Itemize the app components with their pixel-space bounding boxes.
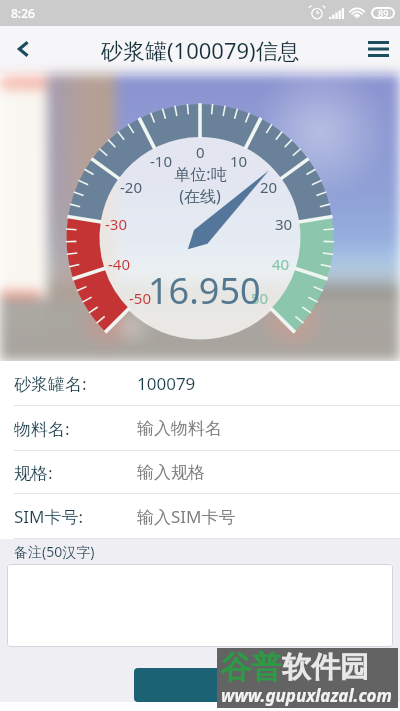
button[interactable]: 砂浆罐名: <box>0 361 400 406</box>
staticText: 输入物料名 <box>137 418 222 439</box>
staticText: www.gupuxlazal.com <box>221 684 392 707</box>
staticText: -50 <box>129 288 151 308</box>
staticText: -20 <box>120 177 142 197</box>
staticText: 物料名: <box>14 417 70 440</box>
staticText: (在线) <box>179 185 221 207</box>
staticText: 提交 <box>245 675 279 696</box>
button[interactable]: Menu <box>352 26 400 74</box>
staticText: 软件园 <box>282 649 369 686</box>
staticText: 谷普 <box>220 648 282 687</box>
staticText: 砂浆罐(100079)信息 <box>101 35 300 65</box>
staticText: 89 <box>378 7 389 19</box>
button[interactable] <box>7 564 393 647</box>
staticText: 单位:吨 <box>174 163 227 185</box>
button[interactable]: Back <box>0 26 48 74</box>
staticText: 输入规格 <box>137 462 205 483</box>
staticText: 输入SIM卡号 <box>137 505 236 528</box>
staticText: 备注(50汉字) <box>14 542 95 561</box>
staticText: -10 <box>150 151 172 171</box>
staticText: 0 <box>196 142 205 162</box>
button[interactable]: SIM卡号: <box>0 494 400 539</box>
staticText: SIM卡号: <box>14 505 84 528</box>
staticText: 16.950 <box>148 266 261 315</box>
button[interactable]: 提交 <box>134 668 390 702</box>
staticText: -30 <box>105 214 127 234</box>
staticText: 100079 <box>137 372 196 395</box>
staticText: 50 <box>251 288 269 308</box>
staticText: 10 <box>230 151 248 171</box>
staticText: -40 <box>108 254 130 274</box>
staticText: 40 <box>272 254 290 274</box>
staticText: 8:26 <box>11 5 35 21</box>
staticText: 20 <box>260 177 278 197</box>
staticText: 规格: <box>14 461 53 484</box>
staticText: 30 <box>275 214 293 234</box>
staticText: 砂浆罐名: <box>14 372 87 395</box>
button[interactable]: 物料名: <box>0 406 400 451</box>
button[interactable]: 规格: <box>0 451 400 494</box>
